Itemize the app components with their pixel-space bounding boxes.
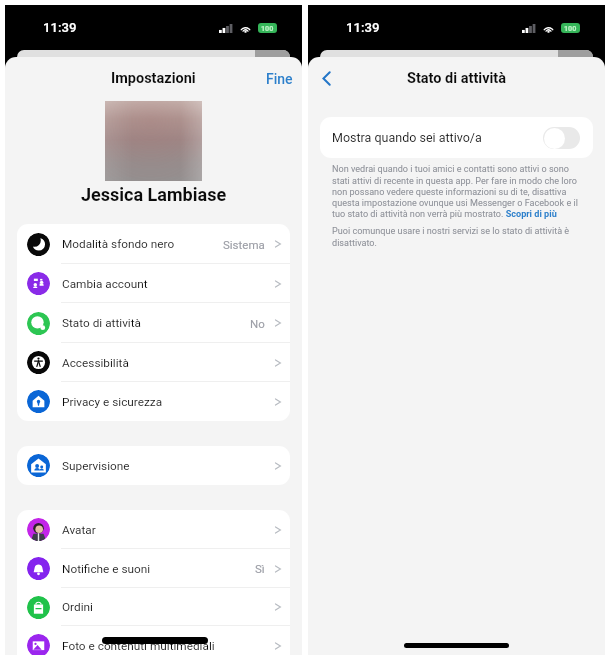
- button[interactable]: Accessibilità: [17, 343, 290, 382]
- staticText: Stato di attività: [407, 70, 506, 87]
- staticText: Puoi comunque usare i nostri servizi se …: [332, 226, 578, 248]
- staticText: Supervisione: [62, 459, 130, 473]
- staticText: Sistema: [223, 238, 265, 251]
- button[interactable]: Notifiche e suoni: [17, 549, 290, 588]
- staticText: No: [250, 317, 265, 330]
- button[interactable]: Ordini: [17, 588, 290, 626]
- button[interactable]: Avatar: [17, 510, 290, 549]
- staticText: Non vedrai quando i tuoi amici e contatt…: [332, 164, 578, 219]
- button[interactable]: Fine: [257, 67, 302, 90]
- staticText: 11:39: [43, 20, 77, 35]
- staticText: Accessibilità: [62, 356, 129, 370]
- button[interactable]: Supervisione: [17, 446, 290, 485]
- staticText: 100: [564, 24, 577, 32]
- button[interactable]: Foto e contenuti multimediali: [17, 626, 290, 655]
- button[interactable]: Stato di attività: [17, 303, 290, 343]
- staticText: Fine: [266, 71, 293, 87]
- staticText: Privacy e sicurezza: [62, 395, 163, 409]
- staticText: Ordini: [62, 600, 93, 614]
- staticText: Impostazioni: [111, 70, 196, 87]
- button[interactable]: Modalità sfondo nero: [17, 224, 290, 264]
- button[interactable]: Privacy e sicurezza: [17, 382, 290, 421]
- button[interactable]: Cambia account: [17, 264, 290, 303]
- button[interactable]: Back: [308, 67, 344, 90]
- staticText: Foto e contenuti multimediali: [62, 639, 215, 653]
- staticText: 100: [261, 24, 274, 32]
- staticText: Modalità sfondo nero: [62, 237, 175, 251]
- staticText: Notifiche e suoni: [62, 562, 151, 576]
- staticText: Cambia account: [62, 277, 148, 291]
- staticText: 11:39: [346, 20, 380, 35]
- staticText: Stato di attività: [62, 316, 141, 330]
- staticText: Jessica Lambiase: [81, 184, 227, 205]
- staticText: Mostra quando sei attivo/a: [332, 130, 482, 145]
- button[interactable]: Mostra quando sei attivo/a: [320, 117, 593, 158]
- staticText: Avatar: [62, 523, 96, 537]
- staticText: Sì: [255, 562, 265, 575]
